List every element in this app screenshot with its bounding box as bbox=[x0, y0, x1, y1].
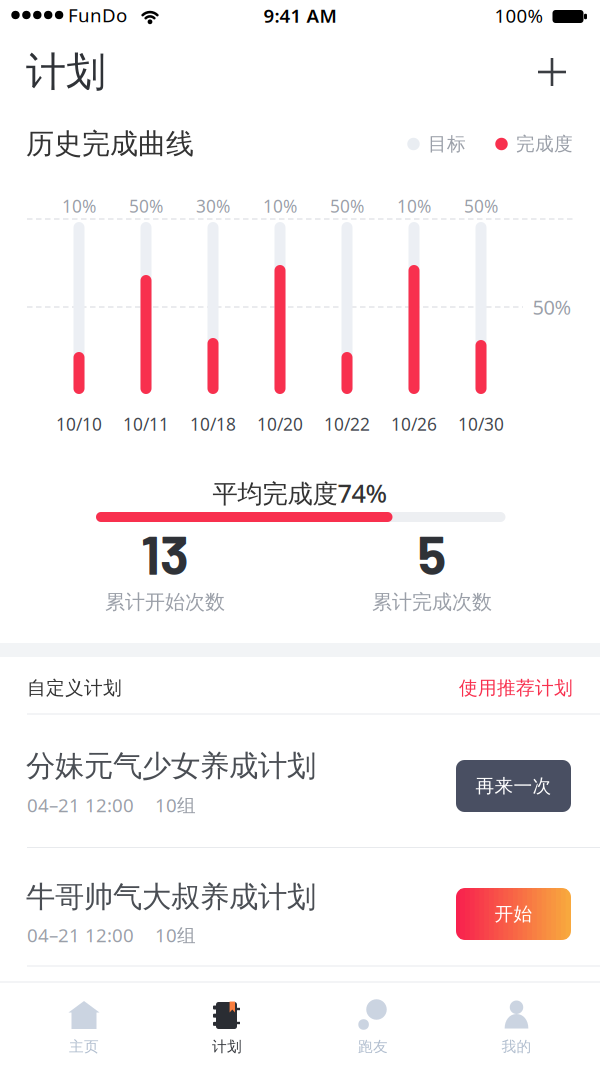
staticText: 50% bbox=[129, 194, 163, 217]
staticText: 开始 bbox=[494, 902, 532, 925]
staticText: 100% bbox=[494, 3, 543, 28]
button[interactable] bbox=[538, 58, 566, 86]
staticText: 再来一次 bbox=[475, 774, 551, 797]
staticText: 10/22 bbox=[324, 412, 370, 435]
staticText: 10/18 bbox=[190, 412, 236, 435]
staticText: 累计完成次数 bbox=[372, 590, 492, 614]
staticText: 自定义计划 bbox=[27, 676, 122, 699]
button[interactable]: 使用推荐计划 bbox=[459, 676, 573, 699]
staticText: 50% bbox=[464, 194, 498, 217]
staticText: 计划 bbox=[26, 47, 106, 96]
staticText: 10组 bbox=[155, 923, 196, 947]
staticText: 13 bbox=[141, 521, 189, 585]
staticText: 50% bbox=[330, 194, 364, 217]
staticText: 10组 bbox=[155, 793, 196, 817]
staticText: 50% bbox=[532, 294, 571, 320]
button[interactable]: 跑友 bbox=[339, 983, 407, 1055]
staticText: 平均完成度74% bbox=[212, 476, 387, 510]
staticText: 10% bbox=[397, 194, 431, 217]
staticText: 10% bbox=[263, 194, 297, 217]
staticText: 我的 bbox=[501, 1037, 531, 1055]
button[interactable]: 再来一次 bbox=[456, 760, 571, 812]
staticText: 累计开始次数 bbox=[105, 590, 225, 614]
staticText: 分妹元气少女养成计划 bbox=[26, 748, 316, 784]
staticText: 10/30 bbox=[458, 412, 504, 435]
staticText: 牛哥帅气大叔养成计划 bbox=[26, 879, 316, 915]
staticText: 主页 bbox=[69, 1037, 99, 1055]
staticText: 04–21 12:00 bbox=[27, 923, 134, 947]
staticText: 10/26 bbox=[391, 412, 437, 435]
staticText: 完成度 bbox=[516, 132, 573, 155]
staticText: 04–21 12:00 bbox=[27, 793, 134, 817]
staticText: 历史完成曲线 bbox=[26, 127, 194, 161]
staticText: 30% bbox=[196, 194, 230, 217]
button[interactable]: 计划 bbox=[193, 983, 261, 1055]
staticText: 10/11 bbox=[123, 412, 169, 435]
staticText: 跑友 bbox=[358, 1037, 388, 1055]
staticText: 目标 bbox=[428, 132, 466, 155]
staticText: 使用推荐计划 bbox=[459, 676, 573, 699]
staticText: 10% bbox=[62, 194, 96, 217]
staticText: 10/10 bbox=[56, 412, 102, 435]
staticText: FunDo bbox=[68, 3, 127, 27]
staticText: 计划 bbox=[212, 1037, 242, 1055]
button[interactable]: 开始 bbox=[456, 888, 571, 940]
staticText: 5 bbox=[417, 521, 446, 585]
staticText: 9:41 AM bbox=[263, 3, 336, 28]
button[interactable]: 我的 bbox=[482, 983, 550, 1055]
button[interactable]: 主页 bbox=[50, 983, 118, 1055]
staticText: 10/20 bbox=[257, 412, 303, 435]
